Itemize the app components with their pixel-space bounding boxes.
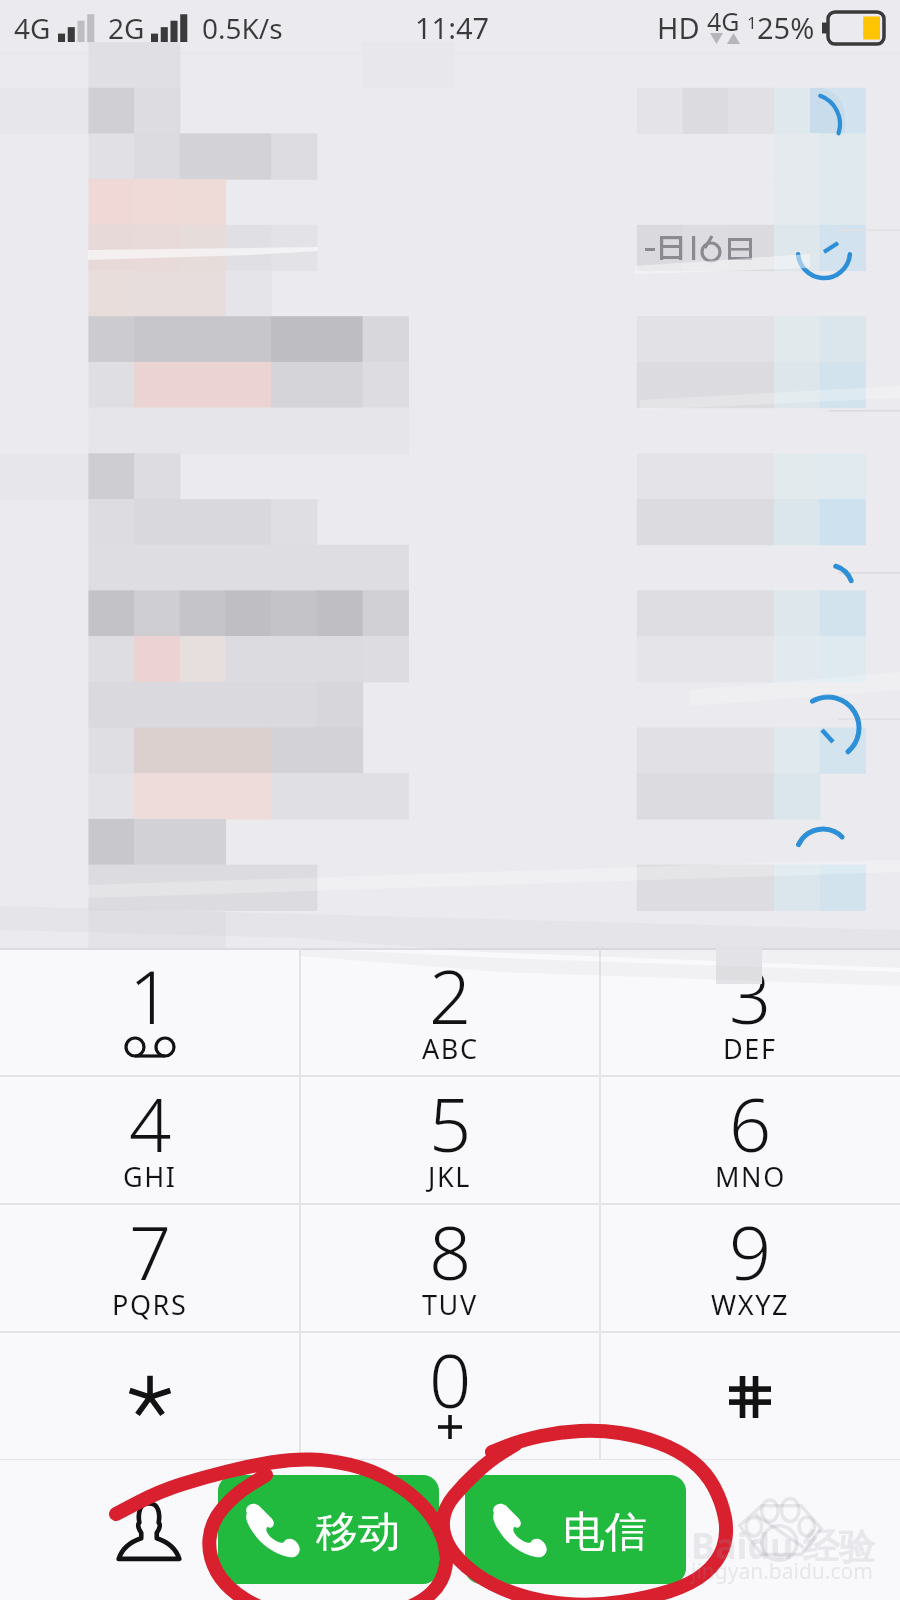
- staticText: 2G: [108, 9, 145, 47]
- button[interactable]: 移动: [218, 1475, 439, 1584]
- staticText: DEF: [723, 1030, 777, 1067]
- staticText: 5: [429, 1073, 472, 1174]
- button[interactable]: 2: [300, 948, 600, 1076]
- staticText: 0.5K/s: [202, 9, 283, 47]
- staticText: 移动: [316, 1506, 400, 1559]
- staticText: Baidu 经验: [691, 1521, 875, 1570]
- staticText: 7: [129, 1201, 172, 1302]
- staticText: WXYZ: [711, 1286, 790, 1323]
- staticText: HD: [657, 8, 700, 47]
- staticText: 6: [729, 1073, 772, 1174]
- staticText: JKL: [428, 1158, 472, 1195]
- staticText: MNO: [715, 1158, 786, 1195]
- staticText: TUV: [422, 1286, 478, 1323]
- button[interactable]: [600, 1332, 900, 1460]
- staticText: 0: [429, 1329, 472, 1430]
- staticText: 4G: [707, 4, 740, 38]
- staticText: jingyan.baidu.com: [691, 1557, 873, 1586]
- button[interactable]: 9: [600, 1204, 900, 1332]
- staticText: ABC: [422, 1030, 479, 1067]
- button[interactable]: Contacts: [104, 1492, 194, 1570]
- button[interactable]: [0, 1332, 300, 1460]
- staticText: 1: [747, 11, 757, 34]
- staticText: 2: [429, 945, 472, 1046]
- button[interactable]: 6: [600, 1076, 900, 1204]
- staticText: 1: [129, 945, 172, 1046]
- button[interactable]: 1: [0, 948, 300, 1076]
- staticText: 4: [129, 1073, 172, 1174]
- staticText: PQRS: [112, 1286, 188, 1323]
- staticText: 电信: [563, 1506, 647, 1559]
- button[interactable]: 电信: [465, 1475, 686, 1584]
- staticText: 8: [429, 1201, 472, 1302]
- button[interactable]: 4: [0, 1076, 300, 1204]
- staticText: 3: [729, 945, 772, 1046]
- staticText: GHI: [123, 1158, 177, 1195]
- staticText: 9: [729, 1201, 772, 1302]
- staticText: 25%: [757, 8, 815, 47]
- button[interactable]: 5: [300, 1076, 600, 1204]
- button[interactable]: 7: [0, 1204, 300, 1332]
- button[interactable]: 3: [600, 948, 900, 1076]
- button[interactable]: 8: [300, 1204, 600, 1332]
- staticText: 4G: [14, 9, 51, 47]
- staticText: 11:47: [415, 8, 490, 47]
- button[interactable]: 0: [300, 1332, 600, 1460]
